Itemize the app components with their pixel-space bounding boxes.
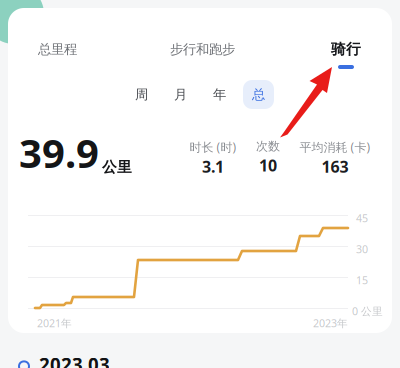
button[interactable]: 总 xyxy=(243,80,274,109)
staticText: 时长 (时) xyxy=(189,139,236,155)
staticText: 3.1 xyxy=(202,156,224,177)
button[interactable]: 月 xyxy=(165,80,196,109)
staticText: 平均消耗 (卡) xyxy=(299,139,370,155)
staticText: 163 xyxy=(321,156,348,177)
staticText: 2021年 xyxy=(37,316,72,330)
staticText: 15 xyxy=(356,273,368,287)
button[interactable]: 总里程 xyxy=(38,41,77,57)
staticText: 骑行 xyxy=(331,40,361,58)
staticText: 30 xyxy=(356,242,368,256)
staticText: 10 xyxy=(259,155,277,176)
button[interactable]: 周 xyxy=(126,80,157,109)
button[interactable]: 骑行 xyxy=(331,40,361,69)
staticText: 公里 xyxy=(102,158,132,176)
button[interactable]: 年 xyxy=(204,80,235,109)
staticText: 年 xyxy=(213,86,226,103)
staticText: 周 xyxy=(135,86,148,103)
staticText: 步行和跑步 xyxy=(170,41,235,57)
staticText: 2023年 xyxy=(313,316,348,330)
staticText: 39.9 xyxy=(19,126,99,179)
staticText: 次数 xyxy=(256,139,280,154)
staticText: 总 xyxy=(252,86,265,103)
button[interactable]: 步行和跑步 xyxy=(170,41,235,57)
staticText: 45 xyxy=(356,211,368,225)
staticText: 总里程 xyxy=(38,41,77,57)
staticText: 0 公里 xyxy=(352,304,383,318)
staticText: 2023.03 xyxy=(39,352,110,368)
staticText: 月 xyxy=(174,86,187,103)
